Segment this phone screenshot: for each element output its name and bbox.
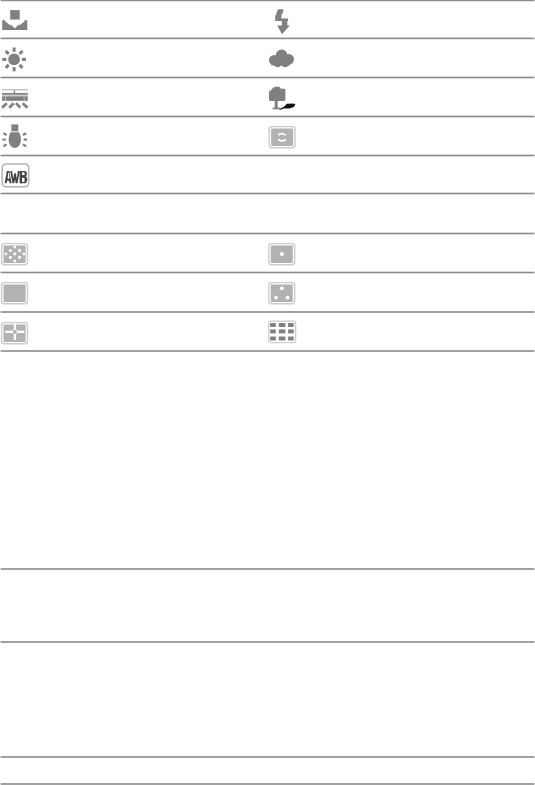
button[interactable]: Incandescent light xyxy=(0,121,30,151)
button[interactable]: Move to inbox xyxy=(0,5,30,35)
button[interactable]: Multi metering xyxy=(267,317,297,347)
button[interactable]: Auto white balance xyxy=(0,160,30,190)
button[interactable]: Spot metering xyxy=(267,238,297,268)
button[interactable]: Flash xyxy=(267,5,297,35)
button[interactable]: Fluorescent light xyxy=(0,82,30,112)
button[interactable]: Cloudy xyxy=(267,43,297,73)
button[interactable]: Average metering xyxy=(0,277,30,307)
button[interactable]: Shade xyxy=(267,82,297,112)
button[interactable]: Centre weighted metering xyxy=(0,317,30,347)
button[interactable]: Sunny xyxy=(0,43,30,73)
button[interactable]: Partial metering xyxy=(267,277,297,307)
button[interactable]: Auto white balance xyxy=(267,121,297,151)
button[interactable]: Matrix metering xyxy=(0,238,30,268)
